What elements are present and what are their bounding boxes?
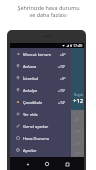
staticText: Genel ayarlar xyxy=(23,124,49,129)
staticText: Çanakkale xyxy=(23,100,43,105)
staticText: +6° xyxy=(60,52,66,57)
button[interactable]: Hava Durumu hakkında xyxy=(10,132,71,144)
staticText: ve daha fazlası xyxy=(29,11,67,18)
staticText: 17:40 xyxy=(73,43,83,48)
button[interactable]: Recent apps xyxy=(63,160,71,168)
staticText: Hava Durumu hakkında xyxy=(23,136,66,141)
staticText: +9° xyxy=(74,118,80,122)
button[interactable]: Genel ayarlar xyxy=(10,120,71,132)
staticText: Antalya xyxy=(23,88,38,93)
staticText: +9° xyxy=(60,76,66,81)
staticText: Yer ekle xyxy=(23,112,38,117)
staticText: +10° xyxy=(58,64,66,69)
staticText: Mevcut konum xyxy=(23,52,51,57)
staticText: Şehrinizde hava durumu xyxy=(17,4,80,11)
button[interactable]: Çanakkale xyxy=(10,96,71,108)
button[interactable]: Mevcut konum xyxy=(10,48,71,60)
staticText: +13° xyxy=(74,130,81,134)
staticText: İstanbul xyxy=(23,76,39,81)
button[interactable]: Back xyxy=(23,160,31,168)
button[interactable]: İstanbul xyxy=(10,72,71,84)
staticText: +15° xyxy=(58,88,66,93)
staticText: Ankara xyxy=(23,64,37,69)
button[interactable]: Home xyxy=(43,160,51,168)
staticText: +11° xyxy=(74,152,81,156)
button[interactable]: Antalya xyxy=(10,84,71,96)
button[interactable]: Ayarlar xyxy=(10,144,71,156)
button[interactable]: Yer ekle xyxy=(10,108,71,120)
staticText: +12 xyxy=(73,97,84,105)
staticText: +14° xyxy=(58,100,66,105)
staticText: Ayarlar xyxy=(23,148,37,153)
staticText: +17° xyxy=(74,142,81,146)
staticText: Bugün xyxy=(74,93,84,97)
button[interactable]: Ankara xyxy=(10,60,71,72)
